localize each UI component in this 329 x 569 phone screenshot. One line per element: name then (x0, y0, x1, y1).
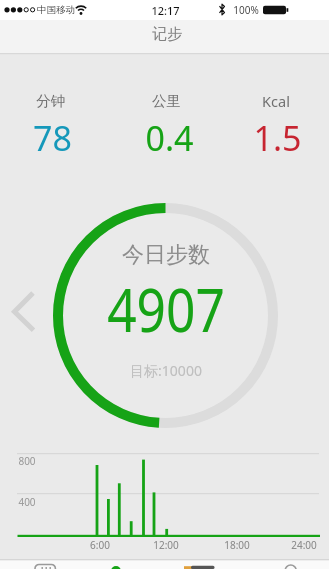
staticText: 24:00 (291, 538, 317, 552)
staticText: 12:00 (153, 538, 179, 552)
staticText: 18:00 (224, 538, 250, 552)
button[interactable] (246, 559, 329, 569)
staticText: 今日步数 (122, 241, 210, 269)
staticText: 中国移动 (37, 4, 75, 16)
staticText: 记步 (152, 25, 182, 44)
staticText: 78 (33, 115, 72, 159)
staticText: 100% (233, 3, 259, 17)
staticText: 分钟 (36, 92, 65, 110)
button[interactable] (82, 559, 164, 569)
staticText: 6:00 (90, 538, 110, 552)
staticText: 800 (18, 454, 36, 468)
button[interactable] (0, 285, 48, 345)
staticText: 目标:10000 (130, 361, 202, 380)
button[interactable] (0, 559, 82, 569)
staticText: 12:17 (151, 3, 180, 18)
staticText: 0.4 (145, 115, 194, 159)
staticText: 1.5 (253, 115, 302, 159)
staticText: 400 (18, 495, 36, 509)
staticText: Kcal (262, 91, 290, 111)
button[interactable] (164, 559, 246, 569)
staticText: 公里 (152, 92, 181, 110)
staticText: 4907 (107, 268, 225, 348)
